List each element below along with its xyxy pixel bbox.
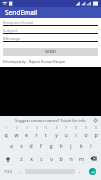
staticText: a	[10, 142, 13, 149]
staticText: u	[64, 131, 68, 138]
staticText: 7	[65, 126, 67, 130]
button[interactable]: j	[66, 139, 76, 152]
staticText: e	[25, 131, 28, 138]
button[interactable]: ?123	[0, 165, 16, 178]
staticText: y	[55, 131, 58, 138]
staticText: q	[4, 131, 8, 138]
staticText: j	[70, 142, 72, 149]
button[interactable]: 0	[91, 125, 101, 139]
staticText: o	[84, 131, 88, 138]
button[interactable]: b	[56, 152, 66, 165]
button[interactable]: 5	[41, 125, 51, 139]
staticText: Subject	[3, 28, 18, 33]
button[interactable]: 4	[31, 125, 41, 139]
button[interactable]: Recipient Email	[3, 20, 98, 26]
button[interactable]: Enter	[84, 165, 101, 178]
button[interactable]: c	[36, 152, 46, 165]
staticText: f	[40, 142, 42, 149]
staticText: ,	[20, 168, 22, 175]
staticText: Recipient Email	[3, 20, 34, 25]
button[interactable]: d	[26, 139, 36, 152]
staticText: 8	[75, 126, 77, 130]
button[interactable]: k	[76, 139, 86, 152]
staticText: SEND	[45, 49, 56, 55]
staticText: w	[14, 131, 19, 138]
staticText: l	[90, 142, 92, 149]
staticText: 4	[36, 126, 38, 130]
staticText: 2	[16, 126, 18, 130]
staticText: SendEmail	[5, 8, 38, 17]
staticText: 1	[5, 126, 7, 130]
staticText: h	[59, 142, 63, 149]
staticText: .	[79, 168, 81, 175]
button[interactable]: v	[46, 152, 56, 165]
button[interactable]: Message	[3, 36, 98, 42]
button[interactable]: 3	[21, 125, 31, 139]
button[interactable]: h	[56, 139, 66, 152]
button[interactable]: Suggest contact names? Touch for info.	[0, 116, 101, 125]
button[interactable]: l	[86, 139, 96, 152]
staticText: 6	[56, 126, 58, 130]
staticText: x	[30, 155, 33, 162]
staticText: c	[40, 155, 43, 162]
staticText: b	[59, 155, 63, 162]
button[interactable]: m	[76, 152, 86, 165]
staticText: p	[94, 131, 98, 138]
staticText: ?123	[4, 169, 12, 174]
staticText: g	[49, 142, 53, 149]
staticText: 0	[95, 126, 97, 130]
staticText: m	[79, 155, 84, 162]
staticText: s	[20, 142, 23, 149]
staticText: Developed by - Rajesh Kumar Ranjan	[3, 59, 65, 64]
button[interactable]: Comma	[16, 165, 25, 178]
button[interactable]: Backspace	[86, 152, 101, 165]
button[interactable]: 1	[0, 125, 11, 139]
staticText: 9	[85, 126, 87, 130]
button[interactable]: a	[6, 139, 16, 152]
staticText: 3	[26, 126, 28, 130]
staticText: z	[20, 155, 23, 162]
button[interactable]: 2	[11, 125, 21, 139]
button[interactable]: Subject	[3, 28, 98, 34]
button[interactable]: 6	[51, 125, 61, 139]
staticText: k	[80, 142, 83, 149]
staticText: t	[45, 131, 47, 138]
button[interactable]: g	[46, 139, 56, 152]
button[interactable]: SEND	[3, 48, 98, 56]
button[interactable]: 9	[81, 125, 91, 139]
staticText: r	[35, 131, 38, 138]
button[interactable]: n	[66, 152, 76, 165]
staticText: Suggest contact names? Touch for info.	[15, 118, 87, 123]
button[interactable]: 8	[71, 125, 81, 139]
button[interactable]: Keyboard settings	[93, 118, 98, 123]
staticText: Message	[3, 36, 21, 41]
button[interactable]: x	[26, 152, 36, 165]
button[interactable]: 7	[61, 125, 71, 139]
staticText: 5	[45, 126, 47, 130]
button[interactable]: f	[36, 139, 46, 152]
staticText: v	[50, 155, 53, 162]
staticText: n	[69, 155, 73, 162]
staticText: i	[75, 131, 77, 138]
staticText: d	[29, 142, 33, 149]
button[interactable]: Period	[75, 165, 84, 178]
button[interactable]: s	[16, 139, 26, 152]
button[interactable]: Shift	[0, 152, 16, 165]
button[interactable]: z	[16, 152, 26, 165]
